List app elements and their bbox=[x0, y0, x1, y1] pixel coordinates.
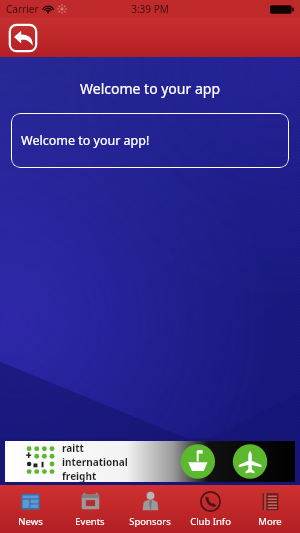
staticText: Events bbox=[75, 515, 105, 528]
staticText: Sponsors bbox=[129, 515, 171, 528]
button[interactable]: Events bbox=[60, 485, 120, 533]
button[interactable]: Welcome to your app! bbox=[11, 113, 289, 168]
staticText: freight bbox=[62, 469, 97, 482]
staticText: Welcome to your app bbox=[0, 79, 300, 98]
staticText: 3:39 PM bbox=[131, 2, 169, 16]
staticText: Welcome to your app! bbox=[21, 132, 150, 149]
staticText: raitt bbox=[62, 441, 84, 455]
staticText: News bbox=[18, 515, 43, 528]
staticText: Carrier bbox=[6, 2, 39, 16]
button[interactable]: More bbox=[240, 485, 300, 533]
button[interactable]: raitt bbox=[5, 441, 295, 482]
staticText: More bbox=[258, 515, 282, 528]
button[interactable]: Sponsors bbox=[120, 485, 180, 533]
button[interactable]: News bbox=[0, 485, 60, 533]
staticText: international bbox=[62, 455, 128, 469]
button[interactable]: Club Info bbox=[180, 485, 240, 533]
staticText: Club Info bbox=[190, 515, 231, 528]
button[interactable]: Back bbox=[8, 23, 38, 53]
